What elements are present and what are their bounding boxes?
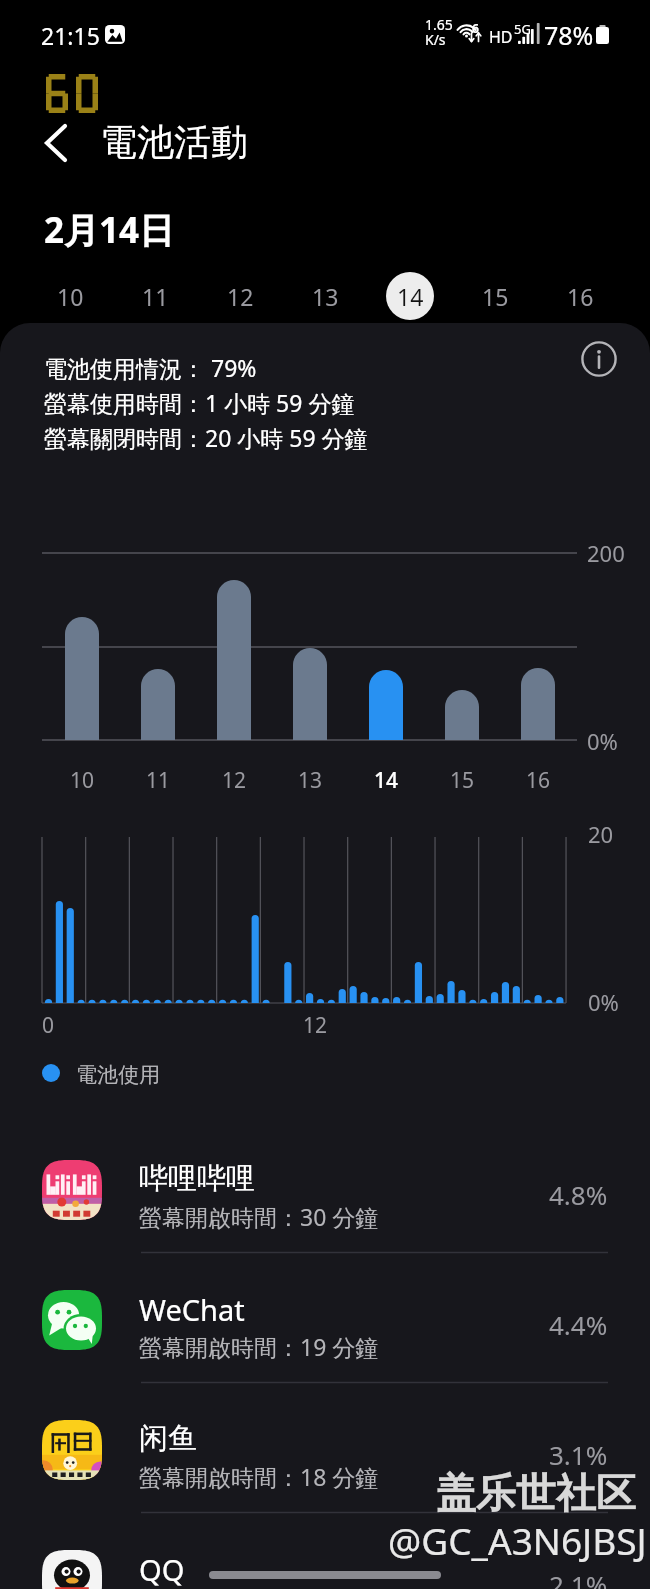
staticText: WeChat xyxy=(139,1290,245,1329)
staticText: 3.1% xyxy=(549,1437,608,1472)
staticText: 14 xyxy=(374,766,399,794)
staticText: QQ xyxy=(139,1550,185,1589)
button[interactable]: 10 xyxy=(34,272,106,320)
button[interactable]: WeChat xyxy=(0,1290,650,1420)
staticText: 12 xyxy=(227,281,254,312)
staticText: 螢幕使用時間：1 小時 59 分鐘 xyxy=(44,387,355,418)
staticText: 4.8% xyxy=(549,1177,608,1212)
staticText: 11 xyxy=(142,281,169,312)
staticText: HD xyxy=(489,26,513,48)
staticText: 螢幕開啟時間：19 分鐘 xyxy=(139,1331,379,1362)
staticText: 16 xyxy=(526,766,551,794)
staticText: 12 xyxy=(222,766,247,794)
staticText: 螢幕開啟時間：30 分鐘 xyxy=(139,1201,379,1232)
button[interactable]: 13 xyxy=(289,272,361,320)
button[interactable]: 16 xyxy=(544,272,616,320)
staticText: 螢幕開啟時間：18 分鐘 xyxy=(139,1461,379,1492)
staticText: 12 xyxy=(303,1011,328,1040)
button[interactable]: 15 xyxy=(459,272,531,320)
staticText: 盖乐世社区 xyxy=(436,1468,636,1518)
staticText: 14 xyxy=(397,281,424,312)
staticText: 電池使用 xyxy=(76,1062,160,1088)
button[interactable]: 14 xyxy=(374,272,446,320)
staticText: 15 xyxy=(482,281,509,312)
button[interactable]: 哔哩哔哩 xyxy=(0,1160,650,1290)
staticText: 16 xyxy=(567,281,594,312)
button[interactable]: Information xyxy=(577,337,621,381)
staticText: 20 xyxy=(588,819,614,849)
button[interactable]: 11 xyxy=(119,272,191,320)
staticText: @GC_A3N6JBSJ xyxy=(388,1515,647,1565)
button[interactable]: Back xyxy=(28,116,84,170)
staticText: 2月14日 xyxy=(44,206,175,254)
staticText: 10 xyxy=(57,281,84,312)
staticText: 螢幕關閉時間：20 小時 59 分鐘 xyxy=(44,422,368,453)
staticText: 0% xyxy=(588,987,619,1017)
staticText: 1.65 xyxy=(425,15,453,34)
staticText: 2.1% xyxy=(549,1567,608,1589)
staticText: 13 xyxy=(298,766,323,794)
staticText: 78% xyxy=(544,18,594,52)
staticText: 5G xyxy=(514,20,531,38)
staticText: 10 xyxy=(70,766,95,794)
staticText: 200 xyxy=(587,538,625,568)
staticText: 15 xyxy=(450,766,475,794)
button[interactable]: QQ xyxy=(0,1550,650,1589)
button[interactable]: 12 xyxy=(204,272,276,320)
staticText: 11 xyxy=(146,766,171,794)
staticText: 0 xyxy=(42,1011,55,1040)
staticText: 闲鱼 xyxy=(139,1420,197,1457)
staticText: 13 xyxy=(312,281,339,312)
staticText: 哔哩哔哩 xyxy=(139,1160,255,1197)
staticText: 電池活動 xyxy=(100,119,248,166)
staticText: 電池使用情況： 79% xyxy=(44,352,257,383)
staticText: 6 xyxy=(472,20,479,36)
staticText: 21:15 xyxy=(41,20,100,51)
staticText: K/s xyxy=(425,30,446,49)
staticText: 4.4% xyxy=(549,1307,608,1342)
button[interactable]: 闲鱼 xyxy=(0,1420,650,1550)
staticText: 0% xyxy=(587,726,618,756)
